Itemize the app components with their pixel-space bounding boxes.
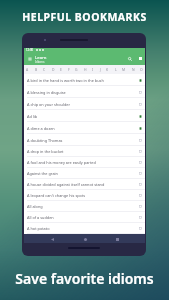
button[interactable]: A drop in the bucket [24,146,145,157]
button[interactable]: Ad lib [24,110,145,122]
button[interactable]: A doubting Thomas [24,134,145,146]
button[interactable]: All of a sudden [24,212,145,223]
button[interactable]: A fool and his money are easily parted [24,157,145,168]
button[interactable]: Back [48,235,56,243]
button[interactable]: M [122,67,126,72]
staticText: Against the grain [27,171,139,176]
button[interactable]: Home [81,235,89,243]
button[interactable]: Navigation menu [24,52,35,65]
staticText: 12:00 [26,48,34,52]
staticText: A house divided against itself cannot st… [27,182,139,187]
staticText: A drop in the bucket [27,149,139,154]
staticText: A chip on your shoulder [27,102,139,107]
staticText: Ad lib [27,114,139,119]
button[interactable]: A dime a dozen [24,122,145,134]
button[interactable]: A leopard can't change his spots [24,190,145,201]
button[interactable]: A blessing in disguise [24,86,145,98]
staticText: All along [27,204,139,209]
button[interactable]: F [68,67,70,72]
button[interactable]: K [106,67,109,72]
button[interactable]: More options [135,52,145,65]
button[interactable]: O [140,67,143,72]
staticText: A blessing in disguise [27,90,139,95]
button[interactable]: A [26,67,29,72]
button[interactable]: J [100,67,101,72]
staticText: A leopard can't change his spots [27,193,139,198]
button[interactable]: H [84,67,87,72]
staticText: A fool and his money are easily parted [27,160,139,165]
button[interactable]: Search [125,52,135,65]
button[interactable]: D [52,67,55,72]
button[interactable]: E [60,67,62,72]
button[interactable]: Against the grain [24,168,145,179]
staticText: A hot potato [27,226,139,231]
staticText: Idioms [35,60,45,64]
staticText: A bird in the hand is worth two in the b… [27,78,139,83]
staticText: HELPFUL BOOKMARKS [22,10,147,24]
button[interactable]: N [132,67,135,72]
button[interactable]: A hot potato [24,223,145,234]
button[interactable]: C [43,67,46,72]
button[interactable]: A bird in the hand is worth two in the b… [24,74,145,86]
button[interactable]: L [115,67,117,72]
staticText: Learn [35,54,47,60]
staticText: A dime a dozen [27,126,139,131]
button[interactable]: I [92,67,94,72]
button[interactable]: B [35,67,38,72]
staticText: Save favorite idioms [15,269,154,288]
staticText: A doubting Thomas [27,138,139,143]
button[interactable]: G [75,67,78,72]
button[interactable]: Recents [113,235,121,243]
button[interactable]: A chip on your shoulder [24,98,145,110]
button[interactable]: All along [24,201,145,212]
button[interactable]: A house divided against itself cannot st… [24,179,145,190]
staticText: All of a sudden [27,215,139,220]
